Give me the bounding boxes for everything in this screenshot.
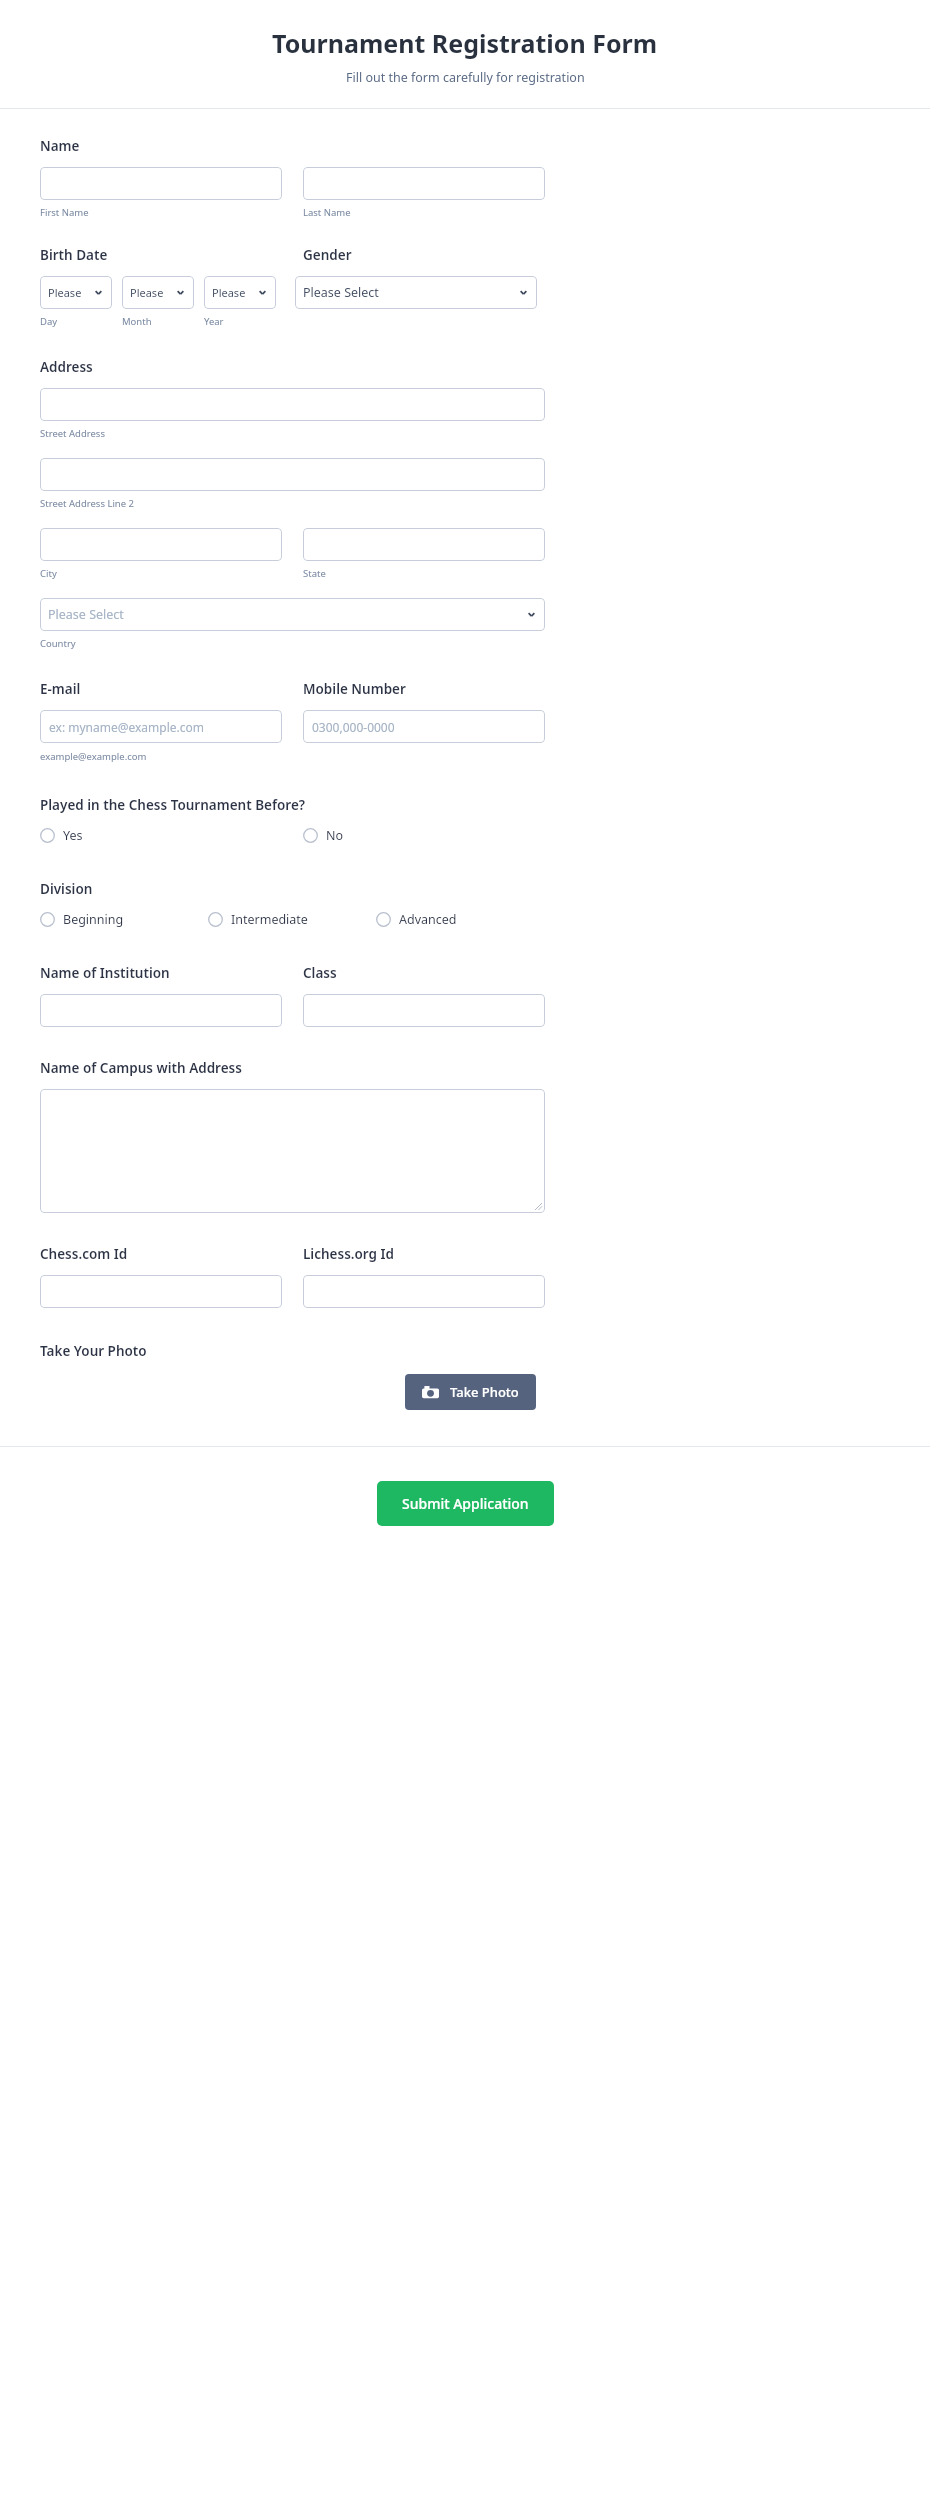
button[interactable]: 0300,000-0000 bbox=[303, 710, 545, 743]
staticText: First Name bbox=[40, 206, 89, 219]
staticText: Lichess.org Id bbox=[303, 1245, 394, 1263]
staticText: example@example.com bbox=[40, 750, 147, 763]
button[interactable] bbox=[303, 994, 545, 1027]
staticText: Played in the Chess Tournament Before? bbox=[40, 796, 306, 814]
button[interactable] bbox=[40, 528, 282, 561]
staticText: Class bbox=[303, 964, 337, 982]
staticText: Birth Date bbox=[40, 246, 303, 264]
staticText: Please bbox=[48, 285, 90, 300]
staticText: Take Your Photo bbox=[40, 1342, 147, 1360]
button[interactable]: Please Select bbox=[40, 598, 545, 631]
button[interactable]: Yes bbox=[40, 827, 303, 844]
staticText: Beginning bbox=[63, 911, 124, 928]
staticText: Address bbox=[40, 358, 93, 376]
button[interactable] bbox=[40, 458, 545, 491]
staticText: Mobile Number bbox=[303, 680, 406, 698]
staticText: Take Photo bbox=[450, 1383, 519, 1401]
button[interactable]: Please bbox=[204, 276, 276, 309]
staticText: Gender bbox=[303, 246, 352, 264]
staticText: Please bbox=[130, 285, 172, 300]
staticText: Tournament Registration Form bbox=[272, 26, 658, 60]
button[interactable]: Intermediate bbox=[208, 911, 376, 928]
staticText: Name of Campus with Address bbox=[40, 1059, 242, 1077]
staticText: Name bbox=[40, 137, 80, 155]
button[interactable] bbox=[40, 388, 545, 421]
button[interactable] bbox=[40, 1089, 545, 1213]
staticText: No bbox=[326, 827, 344, 844]
button[interactable] bbox=[40, 994, 282, 1027]
staticText: Street Address Line 2 bbox=[40, 497, 134, 510]
button[interactable]: Please bbox=[40, 276, 112, 309]
staticText: Name of Institution bbox=[40, 964, 303, 982]
staticText: Please Select bbox=[48, 606, 523, 623]
staticText: Please Select bbox=[303, 284, 515, 301]
staticText: State bbox=[303, 567, 326, 580]
staticText: Intermediate bbox=[231, 911, 308, 928]
staticText: Yes bbox=[63, 827, 83, 844]
button[interactable] bbox=[303, 167, 545, 200]
button[interactable]: Beginning bbox=[40, 911, 208, 928]
button[interactable] bbox=[40, 167, 282, 200]
button[interactable]: ex: myname@example.com bbox=[40, 710, 282, 743]
staticText: Submit Application bbox=[402, 1494, 529, 1513]
staticText: 0300,000-0000 bbox=[312, 719, 395, 735]
staticText: Day bbox=[40, 315, 58, 328]
button[interactable]: Submit Application bbox=[377, 1481, 554, 1526]
staticText: Country bbox=[40, 637, 76, 650]
button[interactable]: No bbox=[303, 827, 344, 844]
staticText: Fill out the form carefully for registra… bbox=[346, 69, 585, 86]
staticText: Division bbox=[40, 880, 93, 898]
staticText: Month bbox=[122, 315, 152, 328]
staticText: ex: myname@example.com bbox=[49, 719, 205, 735]
button[interactable] bbox=[303, 528, 545, 561]
button[interactable]: Take Photo bbox=[405, 1374, 536, 1410]
button[interactable] bbox=[40, 1275, 282, 1308]
staticText: Chess.com Id bbox=[40, 1245, 303, 1263]
button[interactable]: Please Select bbox=[295, 276, 537, 309]
button[interactable] bbox=[303, 1275, 545, 1308]
staticText: Last Name bbox=[303, 206, 351, 219]
staticText: Advanced bbox=[399, 911, 457, 928]
button[interactable]: Please bbox=[122, 276, 194, 309]
staticText: E-mail bbox=[40, 680, 303, 698]
button[interactable]: Advanced bbox=[376, 911, 457, 928]
staticText: Street Address bbox=[40, 427, 105, 440]
staticText: City bbox=[40, 567, 57, 580]
staticText: Please bbox=[212, 285, 254, 300]
staticText: Year bbox=[204, 315, 224, 328]
